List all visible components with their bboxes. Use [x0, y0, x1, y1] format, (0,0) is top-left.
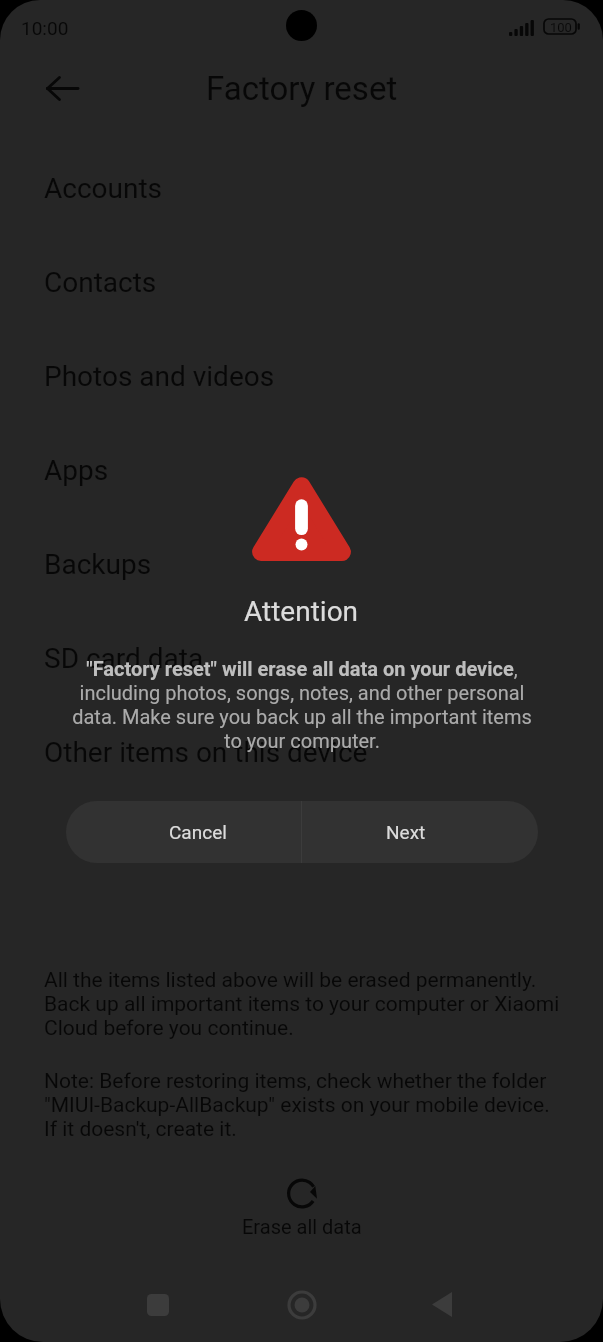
button[interactable]: SD card data: [0, 642, 603, 736]
button[interactable]: Other items on this device: [0, 736, 603, 830]
staticText: 100: [550, 20, 572, 35]
staticText: 10:00: [21, 17, 69, 39]
staticText: All the items listed above will be erase…: [44, 968, 564, 1040]
button[interactable]: Back: [28, 54, 96, 122]
staticText: Backups: [44, 548, 152, 581]
staticText: "Factory reset" will erase all data on y…: [72, 657, 532, 753]
button[interactable]: Photos and videos: [0, 360, 603, 454]
staticText: SD card data: [44, 642, 204, 675]
staticText: Apps: [44, 454, 109, 487]
button[interactable]: Next: [302, 801, 538, 863]
staticText: Erase all data: [242, 1215, 362, 1238]
button[interactable]: Back: [409, 1272, 474, 1337]
staticText: Cancel: [169, 821, 227, 843]
staticText: Note: Before restoring items, check whet…: [44, 1069, 564, 1141]
staticText: Factory reset: [206, 69, 398, 108]
staticText: Attention: [244, 595, 359, 628]
button[interactable]: Erase all data: [0, 1174, 603, 1238]
button[interactable]: Apps: [0, 454, 603, 548]
staticText: Next: [386, 821, 426, 843]
staticText: Photos and videos: [44, 360, 275, 393]
button[interactable]: Backups: [0, 548, 603, 642]
staticText: Accounts: [44, 172, 163, 205]
button[interactable]: Cancel: [66, 801, 301, 863]
button[interactable]: Home: [269, 1272, 334, 1337]
staticText: Contacts: [44, 266, 157, 299]
button[interactable]: Recent apps: [125, 1272, 190, 1337]
staticText: Other items on this device: [44, 736, 368, 769]
